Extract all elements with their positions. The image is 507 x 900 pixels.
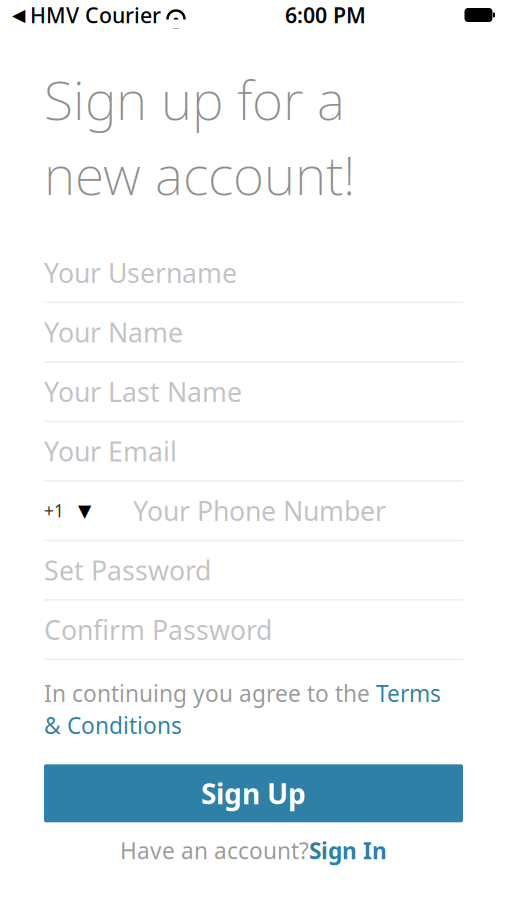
staticText: Your Phone Number — [133, 493, 386, 528]
button[interactable]: +1 — [44, 482, 463, 541]
staticText: HMV Courier — [30, 1, 161, 29]
staticText: 6:00 PM — [285, 1, 366, 29]
button[interactable]: Have an account? — [44, 830, 463, 870]
staticText: Terms — [376, 678, 441, 708]
staticText: Your Name — [44, 314, 183, 350]
button[interactable]: In continuing you agree to the — [0, 660, 463, 740]
button[interactable]: Your Email — [44, 422, 463, 482]
button[interactable]: Your Name — [44, 303, 463, 363]
staticText: In continuing you agree to the — [44, 678, 376, 708]
staticText: +1 — [44, 499, 64, 522]
staticText: Sign up for a — [44, 64, 345, 135]
staticText: & Conditions — [44, 710, 182, 740]
staticText: Your Email — [44, 433, 177, 469]
staticText: Have an account? — [120, 835, 309, 865]
staticText: ◀ — [12, 5, 25, 25]
staticText: Sign In — [309, 835, 387, 865]
staticText: Your Username — [44, 255, 237, 290]
button[interactable]: Confirm Password — [44, 601, 463, 660]
staticText: Confirm Password — [44, 612, 272, 647]
button[interactable]: Your Username — [44, 244, 463, 303]
staticText: new account! — [44, 139, 355, 210]
staticText: Sign Up — [201, 775, 306, 812]
button[interactable]: Set Password — [44, 541, 463, 601]
button[interactable]: Your Last Name — [44, 363, 463, 422]
button[interactable]: Sign Up — [44, 764, 463, 822]
staticText: Set Password — [44, 552, 211, 588]
staticText: Your Last Name — [44, 374, 242, 409]
staticText: ▼ — [78, 501, 91, 520]
